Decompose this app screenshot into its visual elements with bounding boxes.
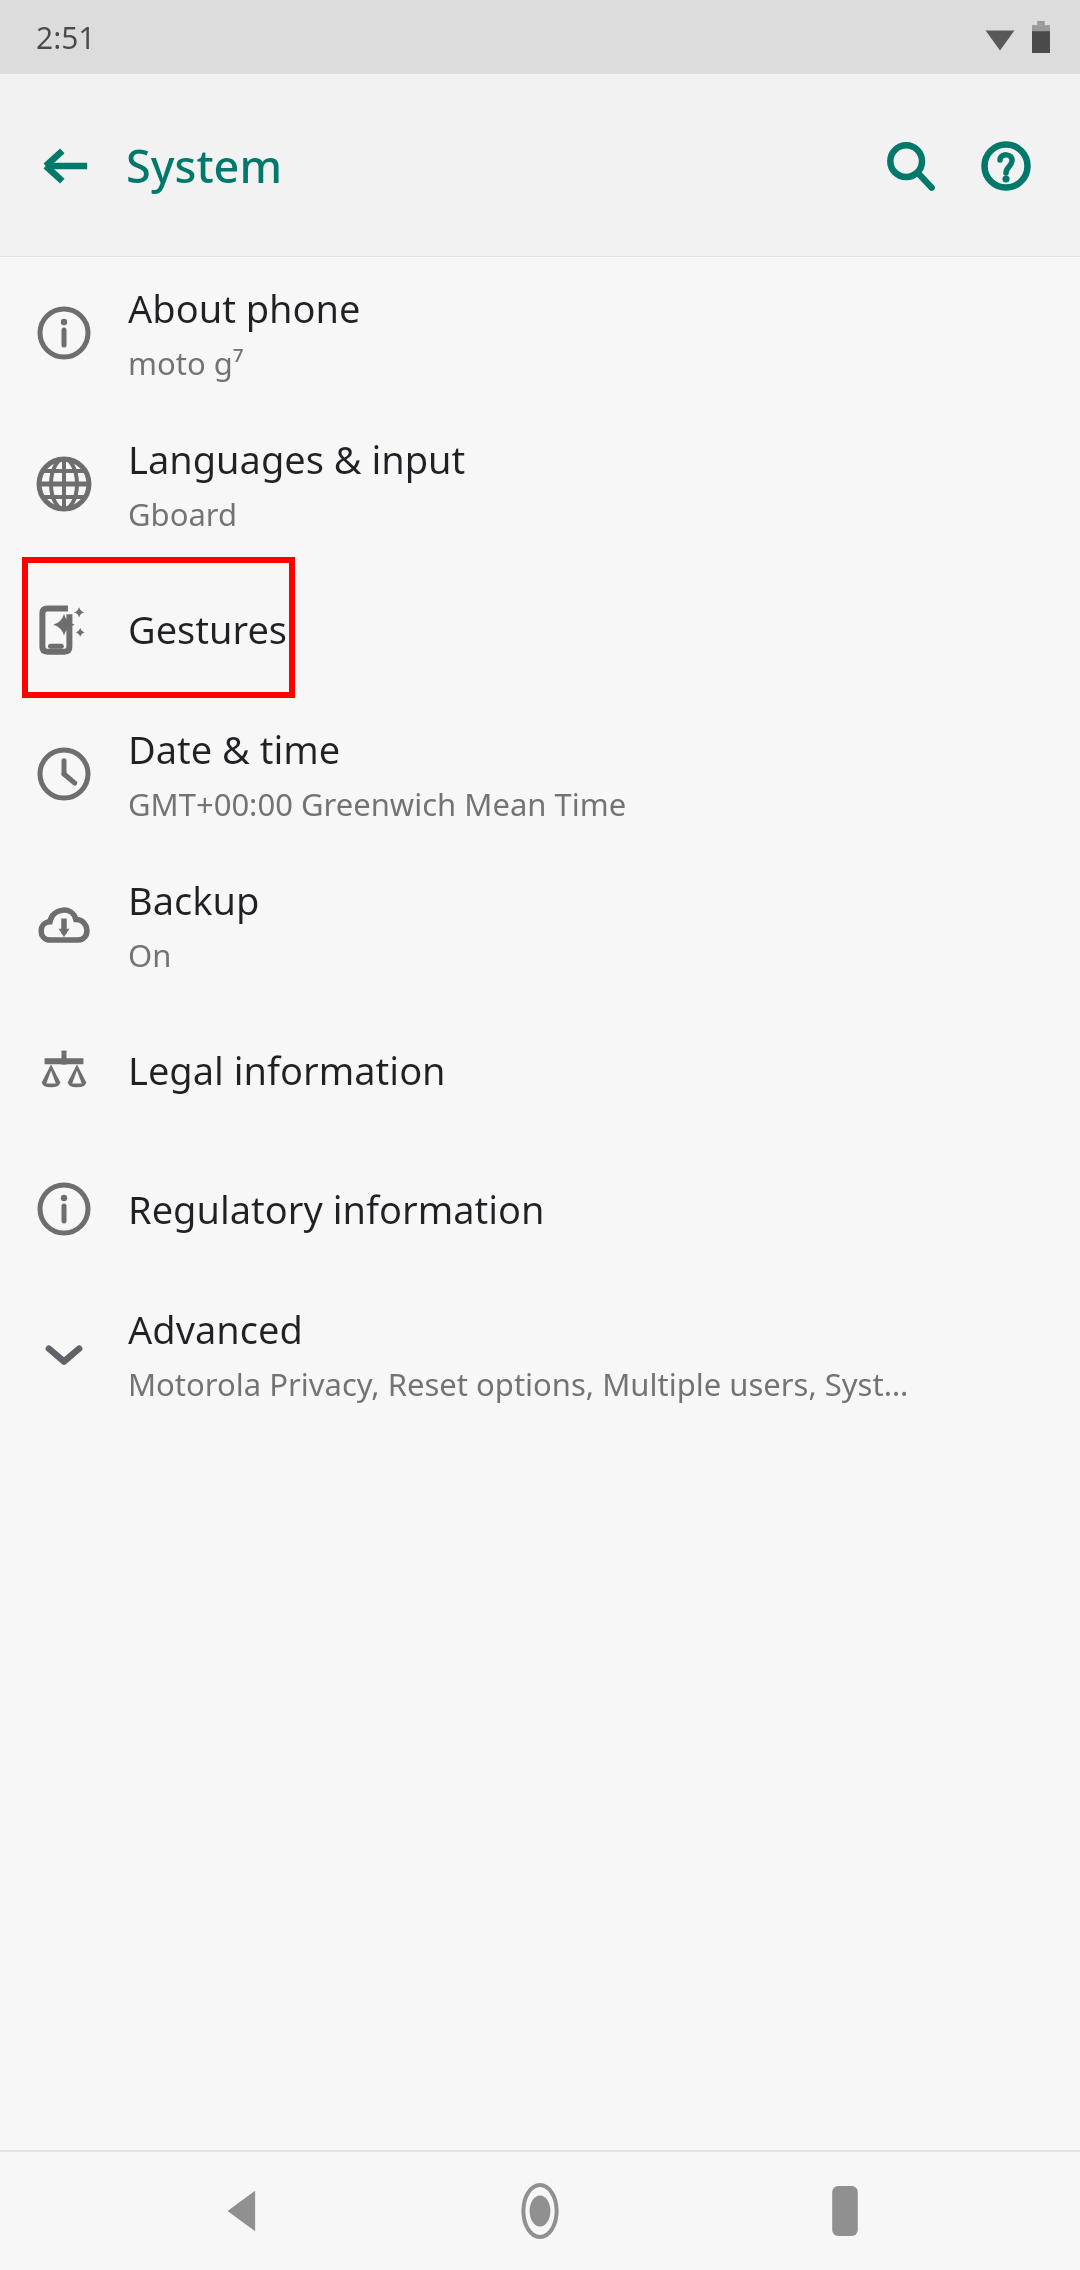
button[interactable]: Home — [480, 2152, 600, 2270]
staticText: 2:51 — [36, 17, 96, 58]
button[interactable]: Recent apps — [785, 2152, 905, 2270]
staticText: Regulatory information — [128, 1183, 545, 1235]
staticText: Backup — [128, 874, 260, 926]
staticText: Languages & input — [128, 433, 466, 485]
button[interactable]: Help — [958, 118, 1054, 214]
button[interactable]: Back — [18, 118, 114, 214]
staticText: Date & time — [128, 723, 341, 775]
button[interactable]: Legal information — [0, 1000, 1080, 1139]
button[interactable]: Search — [862, 118, 958, 214]
staticText: About phone — [128, 282, 361, 334]
staticText: GMT+00:00 Greenwich Mean Time — [128, 783, 627, 825]
button[interactable]: Back — [185, 2152, 305, 2270]
staticText: System — [126, 135, 283, 196]
button[interactable]: Gestures — [0, 559, 1080, 698]
staticText: Gboard — [128, 493, 238, 535]
staticText: Legal information — [128, 1044, 446, 1096]
button[interactable]: Regulatory information — [0, 1139, 1080, 1278]
button[interactable]: Backup — [0, 849, 1080, 1000]
button[interactable]: About phone — [0, 257, 1080, 408]
button[interactable]: Languages & input — [0, 408, 1080, 559]
staticText: On — [128, 934, 172, 976]
button[interactable]: Advanced — [0, 1278, 1080, 1429]
button[interactable]: Date & time — [0, 698, 1080, 849]
staticText: Motorola Privacy, Reset options, Multipl… — [128, 1363, 909, 1405]
staticText: moto g⁷ — [128, 342, 244, 384]
staticText: Advanced — [128, 1303, 303, 1355]
staticText: Gestures — [128, 603, 288, 655]
